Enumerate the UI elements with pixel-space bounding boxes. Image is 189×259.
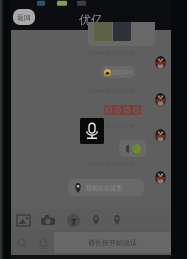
staticText: 优亿Go [112,68,132,76]
staticText: 12-06-02 13:51:32 [89,87,135,94]
staticText: 12-06-02 13:51:53 [89,160,135,167]
button[interactable]: Location [88,212,104,228]
staticText: 请长按开始说话 [88,238,137,247]
button[interactable]: 我现在在这里 [68,179,144,196]
button[interactable]: Gallery [14,211,32,229]
staticText: 12-06-02 13:51:40 [89,122,135,129]
button[interactable]: 请长按开始说话 [54,232,171,253]
staticText: 优亿 [79,12,103,27]
button[interactable]: 返回 [13,9,35,25]
button[interactable]: Camera [39,211,57,229]
button[interactable]: Search [14,235,30,251]
staticText: 返回 [17,13,31,22]
button[interactable]: Notifications [35,235,51,251]
button[interactable] [119,140,146,157]
button[interactable] [88,22,155,46]
button[interactable]: Text [64,211,82,229]
staticText: T [71,215,77,227]
button[interactable]: 优亿Go [101,66,135,78]
staticText: 12-06-02 13:51:16 [89,49,135,56]
button[interactable]: Map [109,212,125,228]
staticText: 我现在在这里 [86,184,122,192]
